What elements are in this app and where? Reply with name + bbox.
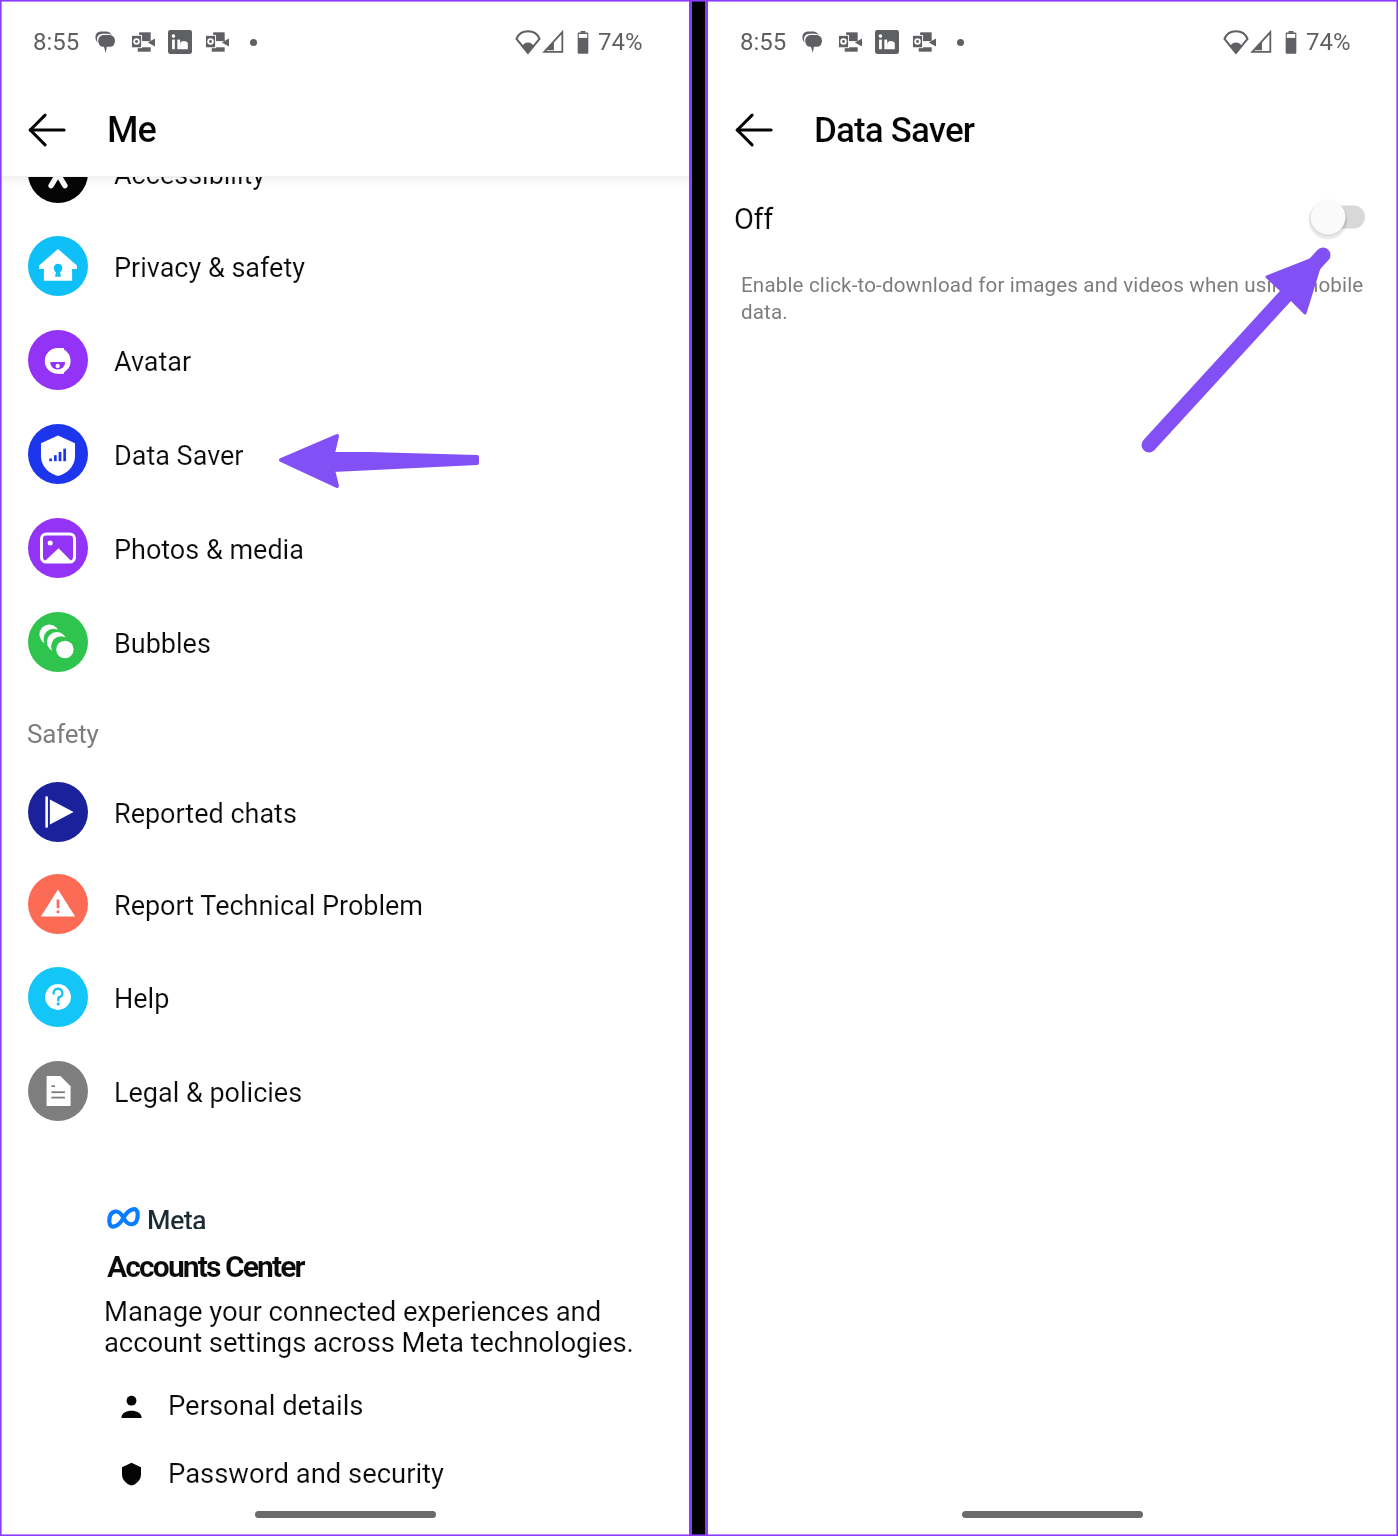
button[interactable]: Photos & media xyxy=(1,518,689,578)
button[interactable]: Help xyxy=(1,967,689,1027)
staticText: Accounts Center xyxy=(107,1249,304,1284)
button[interactable]: Bubbles xyxy=(1,612,689,672)
staticText: Enable click-to-download for images and … xyxy=(741,273,1364,324)
button[interactable]: Avatar xyxy=(1,330,689,390)
staticText: Privacy & safety xyxy=(114,252,306,284)
staticText: 8:55 xyxy=(33,28,80,56)
button[interactable]: Off xyxy=(708,191,1397,247)
staticText: Report Technical Problem xyxy=(114,890,424,922)
staticText: Me xyxy=(107,109,157,151)
button[interactable]: Password and security xyxy=(107,1451,547,1497)
staticText: Data Saver xyxy=(114,440,244,472)
staticText: Personal details xyxy=(168,1390,364,1422)
staticText: Password and security xyxy=(168,1458,445,1490)
staticText: Photos & media xyxy=(114,534,304,566)
button[interactable]: Report Technical Problem xyxy=(1,874,689,934)
staticText: Data Saver xyxy=(814,110,975,151)
button[interactable]: Back xyxy=(17,100,77,160)
button[interactable]: Back xyxy=(724,100,784,160)
staticText: Meta xyxy=(147,1205,206,1229)
staticText: Help xyxy=(114,983,170,1015)
staticText: Manage your connected experiences and ac… xyxy=(104,1295,634,1358)
staticText: Reported chats xyxy=(114,798,297,830)
button[interactable]: Data Saver xyxy=(1,424,689,484)
staticText: 74% xyxy=(598,28,643,56)
button[interactable]: Accessibility xyxy=(1,143,689,203)
button[interactable]: Privacy & safety xyxy=(1,236,689,296)
staticText: Safety xyxy=(27,719,99,749)
staticText: Accessibility xyxy=(114,159,266,191)
staticText: 74% xyxy=(1306,28,1351,56)
staticText: Off xyxy=(734,202,773,236)
button[interactable]: Reported chats xyxy=(1,782,689,842)
staticText: Bubbles xyxy=(114,628,211,660)
staticText: Legal & policies xyxy=(114,1077,303,1109)
staticText: Avatar xyxy=(114,346,192,378)
staticText: 8:55 xyxy=(740,28,787,56)
button[interactable]: Personal details xyxy=(107,1383,547,1429)
button[interactable]: Legal & policies xyxy=(1,1061,689,1121)
